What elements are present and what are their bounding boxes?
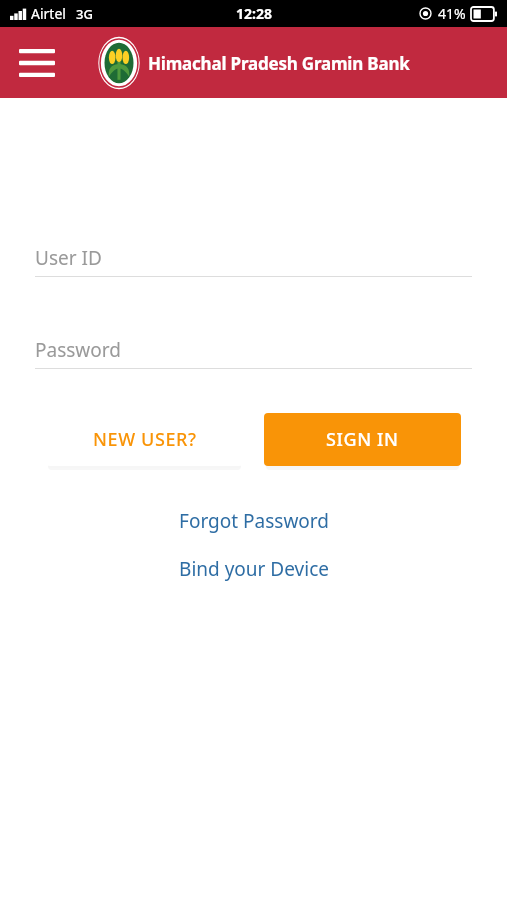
staticText: 3G bbox=[76, 5, 93, 23]
button[interactable]: Password bbox=[35, 335, 472, 365]
button[interactable]: NEW USER? bbox=[46, 413, 243, 466]
staticText: Password bbox=[35, 337, 121, 363]
staticText: Forgot Password bbox=[179, 508, 329, 534]
staticText: Airtel bbox=[31, 4, 66, 23]
staticText: 41% bbox=[438, 4, 466, 23]
staticText: Bind your Device bbox=[179, 556, 329, 582]
button[interactable]: Bind your Device bbox=[0, 556, 507, 582]
button[interactable]: Forgot Password bbox=[0, 508, 507, 534]
staticText: User ID bbox=[35, 245, 102, 271]
staticText: 12:28 bbox=[236, 4, 272, 23]
button[interactable]: User ID bbox=[35, 243, 472, 273]
staticText: Himachal Pradesh Gramin Bank bbox=[148, 52, 410, 75]
staticText: NEW USER? bbox=[93, 427, 197, 452]
button[interactable]: Open navigation menu bbox=[14, 43, 60, 83]
button[interactable]: SIGN IN bbox=[264, 413, 461, 466]
staticText: SIGN IN bbox=[326, 427, 399, 452]
